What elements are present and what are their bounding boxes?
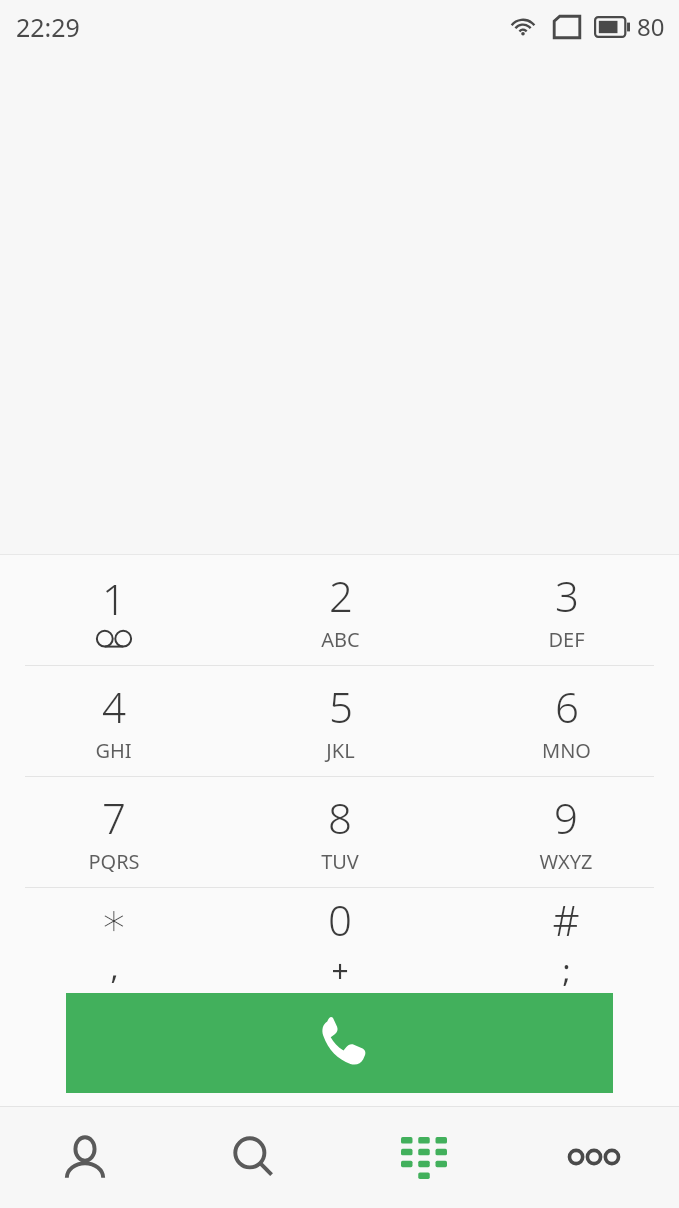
- staticText: GHI: [95, 737, 132, 764]
- button[interactable]: 8: [227, 777, 453, 887]
- staticText: JKL: [326, 737, 355, 764]
- staticText: 2: [329, 567, 353, 624]
- button[interactable]: 2: [227, 555, 453, 665]
- button[interactable]: Dialpad: [339, 1107, 509, 1208]
- button[interactable]: More options: [509, 1107, 679, 1208]
- staticText: PQRS: [88, 848, 140, 875]
- button[interactable]: Search: [169, 1107, 339, 1208]
- staticText: 7: [102, 789, 126, 846]
- staticText: ∗: [100, 894, 128, 945]
- button[interactable]: 0: [227, 888, 453, 993]
- button[interactable]: Call: [66, 993, 613, 1093]
- staticText: 1: [102, 570, 126, 627]
- button[interactable]: 6: [453, 666, 679, 776]
- button[interactable]: ∗: [0, 888, 227, 993]
- staticText: TUV: [321, 848, 359, 875]
- staticText: ;: [562, 950, 571, 991]
- staticText: ABC: [321, 626, 360, 653]
- staticText: 4: [102, 678, 126, 735]
- button[interactable]: 9: [453, 777, 679, 887]
- staticText: 6: [555, 678, 579, 735]
- staticText: 3: [555, 567, 579, 624]
- button[interactable]: #: [453, 888, 679, 993]
- staticText: +: [331, 950, 349, 991]
- staticText: #: [552, 891, 580, 948]
- staticText: 5: [329, 678, 353, 735]
- button[interactable]: 4: [0, 666, 227, 776]
- staticText: 8: [328, 789, 352, 846]
- button[interactable]: 3: [453, 555, 679, 665]
- button[interactable]: Contacts: [0, 1107, 169, 1208]
- staticText: ,: [110, 947, 119, 988]
- staticText: WXYZ: [539, 848, 593, 875]
- staticText: 0: [328, 891, 352, 948]
- staticText: 22:29: [16, 10, 80, 44]
- button[interactable]: 5: [227, 666, 453, 776]
- staticText: 9: [554, 789, 578, 846]
- staticText: MNO: [542, 737, 591, 764]
- staticText: 80: [637, 10, 665, 43]
- button[interactable]: 7: [0, 777, 227, 887]
- button[interactable]: 1: [0, 555, 227, 665]
- staticText: DEF: [548, 626, 585, 653]
